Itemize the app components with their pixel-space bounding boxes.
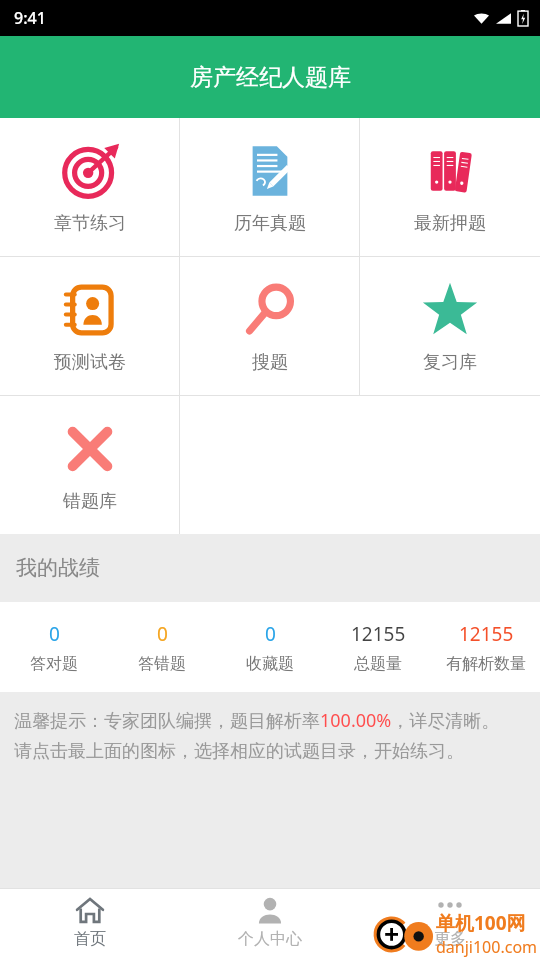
button[interactable]: 复习库: [360, 257, 540, 395]
staticText: 错题库: [63, 490, 117, 513]
staticText: 历年真题: [234, 212, 306, 235]
staticText: 0: [49, 621, 60, 647]
staticText: 答对题: [30, 654, 78, 674]
staticText: 个人中心: [238, 929, 302, 949]
staticText: 章节练习: [54, 212, 126, 235]
staticText: 9:41: [14, 7, 46, 29]
staticText: 更多: [434, 929, 466, 949]
staticText: 12155: [459, 621, 514, 647]
staticText: 单机100网: [436, 910, 526, 936]
staticText: 收藏题: [246, 654, 294, 674]
button[interactable]: 更多: [360, 888, 540, 960]
staticText: 搜题: [252, 351, 288, 374]
staticText: danji100.com: [436, 936, 538, 958]
staticText: 温馨提示：专家团队编撰，题目解析率100.00%，详尽清晰。 请点击最上面的图标…: [14, 708, 500, 763]
button[interactable]: 章节练习: [0, 118, 180, 256]
staticText: 首页: [74, 929, 106, 949]
button[interactable]: 个人中心: [180, 888, 360, 960]
staticText: 有解析数量: [446, 654, 526, 674]
staticText: 最新押题: [414, 212, 486, 235]
staticText: 复习库: [423, 351, 477, 374]
staticText: 12155: [351, 621, 406, 647]
button[interactable]: 最新押题: [360, 118, 540, 256]
button[interactable]: 预测试卷: [0, 257, 180, 395]
staticText: 总题量: [354, 654, 402, 674]
staticText: 房产经纪人题库: [190, 63, 351, 92]
staticText: 预测试卷: [54, 351, 126, 374]
staticText: 答错题: [138, 654, 186, 674]
staticText: 我的战绩: [16, 555, 100, 581]
staticText: 0: [265, 621, 276, 647]
button[interactable]: 首页: [0, 888, 180, 960]
button[interactable]: 错题库: [0, 396, 180, 534]
button[interactable]: 搜题: [180, 257, 360, 395]
button[interactable]: 历年真题: [180, 118, 360, 256]
staticText: 0: [157, 621, 168, 647]
